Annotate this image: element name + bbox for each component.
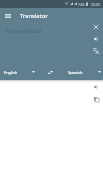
button[interactable]: Swap languages	[44, 66, 56, 78]
button[interactable]: Open navigation drawer	[0, 8, 16, 24]
staticText: Spanish	[68, 70, 83, 75]
button[interactable]: Listen to source text	[90, 33, 102, 45]
staticText: English	[4, 70, 18, 75]
button[interactable]: Spanish	[63, 65, 103, 79]
button[interactable]: Translate	[90, 45, 102, 57]
staticText: 22:32	[91, 2, 100, 7]
button[interactable]: English	[0, 65, 38, 79]
button[interactable]: Copy translation	[90, 93, 102, 105]
button[interactable]: Listen to translation	[90, 81, 102, 93]
staticText: Tap to enter text	[5, 28, 42, 34]
staticText: Translator	[20, 12, 48, 20]
staticText: 74%	[78, 2, 85, 7]
button[interactable]: Clear text	[90, 21, 102, 33]
